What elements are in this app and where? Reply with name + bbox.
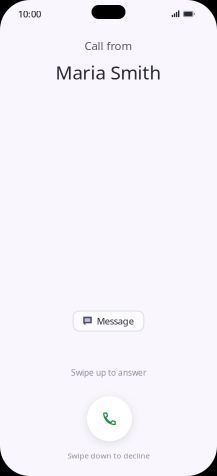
button[interactable]: Message <box>73 311 144 331</box>
staticText: Call from <box>84 38 132 53</box>
staticText: Message <box>97 315 134 327</box>
staticText: 10:00 <box>18 8 41 20</box>
staticText: Swipe up to answer <box>71 367 146 378</box>
button[interactable]: Answer call <box>87 396 132 441</box>
staticText: Maria Smith <box>55 59 161 85</box>
staticText: Swipe down to decline <box>67 450 149 461</box>
